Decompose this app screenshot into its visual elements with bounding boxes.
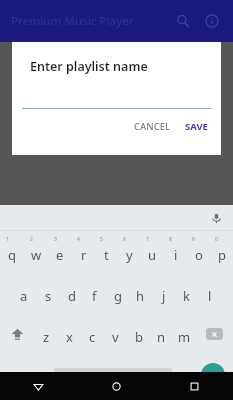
staticText: h [136,287,145,305]
button[interactable]: , [34,354,54,395]
button[interactable]: m [173,313,196,354]
button[interactable]: Shift [0,313,35,354]
button[interactable]: Back [0,372,77,400]
staticText: 3 [54,236,57,243]
button[interactable]: Voice input [206,208,226,228]
button[interactable]: g [106,272,129,313]
button[interactable]: n [150,313,173,354]
button[interactable]: 3 [48,231,72,272]
staticText: f [92,287,97,305]
staticText: v [112,328,119,346]
staticText: Premium Music Player [11,13,134,29]
button[interactable]: 5 [95,231,118,272]
staticText: w [31,246,42,264]
staticText: 7 [146,236,149,243]
staticText: b [135,328,143,346]
staticText: q [8,246,16,264]
button[interactable]: SAVE [178,116,221,137]
staticText: i [174,246,178,264]
button[interactable]: l [198,272,221,313]
staticText: ?123 [7,369,27,381]
staticText: 2 [30,236,33,243]
staticText: SAVE [185,120,208,133]
staticText: z [43,328,50,346]
staticText: p [218,246,226,264]
staticText: n [157,328,166,346]
button[interactable]: . [172,354,192,395]
button[interactable]: 4 [72,231,95,272]
button[interactable]: 0 [210,231,233,272]
staticText: u [148,246,157,264]
staticText: c [89,328,96,346]
staticText: 8 [169,236,172,243]
staticText: x [66,328,73,346]
button[interactable]: k [175,272,198,313]
staticText: s [45,287,52,305]
staticText: 0 [215,236,218,243]
button[interactable]: 6 [118,231,141,272]
button[interactable]: Enter [192,354,233,395]
button[interactable] [12,92,221,109]
button[interactable]: a [12,272,36,313]
button[interactable]: CANCEL [127,116,178,137]
button[interactable]: b [127,313,150,354]
button[interactable]: s [36,272,60,313]
button[interactable]: z [35,313,58,354]
staticText: Enter playlist name [30,58,148,75]
staticText: CANCEL [134,120,171,133]
button[interactable]: Search [169,7,197,35]
button[interactable]: c [81,313,104,354]
button[interactable]: Recents [155,372,233,400]
button[interactable]: h [129,272,152,313]
staticText: k [183,287,190,305]
staticText: 4 [77,236,80,243]
button[interactable]: Home [77,372,155,400]
staticText: d [68,287,76,305]
staticText: m [178,328,191,346]
button[interactable]: 8 [164,231,187,272]
staticText: , [43,367,46,382]
button[interactable]: Space [54,354,172,395]
staticText: l [208,287,212,305]
button[interactable]: j [152,272,175,313]
staticText: o [195,246,203,264]
button[interactable]: 9 [187,231,210,272]
staticText: a [20,287,28,305]
button[interactable]: Backspace [196,313,233,354]
staticText: 9 [192,236,195,243]
button[interactable]: 7 [141,231,164,272]
staticText: 5 [100,236,103,243]
button[interactable]: v [104,313,127,354]
button[interactable]: ?123 [0,354,34,395]
staticText: y [126,246,133,264]
staticText: e [56,246,64,264]
button[interactable]: x [58,313,81,354]
staticText: t [104,246,109,264]
staticText: 6 [123,236,126,243]
staticText: r [81,246,87,264]
button[interactable]: 1 [0,231,24,272]
button[interactable]: Info [198,7,226,35]
staticText: j [162,287,166,305]
staticText: g [114,287,122,305]
staticText: . [181,367,184,382]
staticText: 1 [6,236,9,243]
button[interactable]: f [83,272,106,313]
button[interactable]: d [60,272,83,313]
button[interactable]: 2 [24,231,48,272]
